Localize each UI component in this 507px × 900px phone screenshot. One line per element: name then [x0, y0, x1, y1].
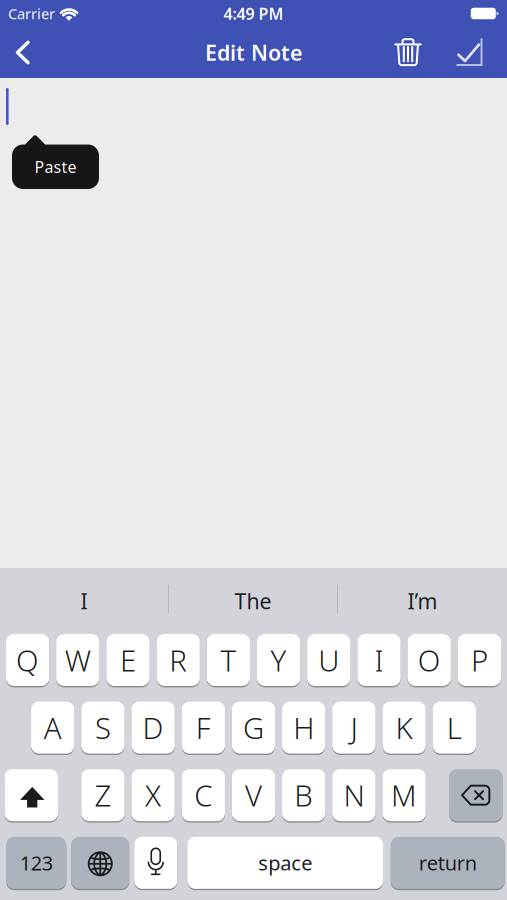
button[interactable]: I [357, 634, 401, 686]
staticText: H [293, 708, 314, 747]
button[interactable]: Shift [4, 769, 58, 821]
button[interactable]: F [182, 702, 225, 754]
button[interactable]: R [156, 634, 200, 686]
staticText: return [419, 849, 477, 876]
button[interactable]: U [307, 634, 350, 686]
button[interactable]: Next keyboard [71, 837, 129, 889]
staticText: Edit Note [205, 38, 302, 67]
staticText: I’m [407, 587, 437, 615]
button[interactable]: Q [6, 634, 49, 686]
button[interactable]: D [131, 702, 175, 754]
staticText: Y [271, 640, 287, 679]
button[interactable]: M [382, 769, 426, 821]
button[interactable]: I [0, 568, 168, 634]
button[interactable]: J [332, 702, 375, 754]
staticText: N [343, 776, 364, 815]
button[interactable]: W [56, 634, 99, 686]
button[interactable]: N [332, 769, 375, 821]
button[interactable]: B [282, 769, 325, 821]
staticText: K [396, 708, 413, 747]
button[interactable]: O [407, 634, 451, 686]
button[interactable]: Z [81, 769, 124, 821]
staticText: F [196, 708, 211, 747]
button[interactable]: S [81, 702, 124, 754]
staticText: S [95, 708, 111, 747]
staticText: O [418, 640, 441, 679]
button[interactable]: E [106, 634, 150, 686]
button[interactable]: Delete note [383, 27, 433, 78]
staticText: D [143, 708, 164, 747]
button[interactable]: Numbers [6, 837, 66, 889]
button[interactable]: K [382, 702, 426, 754]
button[interactable]: A [31, 702, 74, 754]
staticText: E [120, 640, 136, 679]
staticText: R [169, 640, 187, 679]
button[interactable]: L [433, 702, 476, 754]
staticText: L [447, 708, 462, 747]
button[interactable]: Back [0, 27, 46, 78]
staticText: Paste [34, 156, 76, 177]
button[interactable]: X [131, 769, 175, 821]
staticText: space [258, 849, 312, 876]
staticText: I [374, 640, 383, 679]
staticText: B [294, 776, 313, 815]
staticText: Z [94, 776, 111, 815]
button[interactable]: Delete [449, 769, 502, 821]
staticText: Q [16, 640, 39, 679]
staticText: P [471, 640, 488, 679]
staticText: 123 [20, 849, 53, 876]
staticText: M [391, 776, 417, 815]
staticText: V [245, 776, 262, 815]
button[interactable]: P [458, 634, 501, 686]
button[interactable]: H [282, 702, 325, 754]
staticText: T [220, 640, 236, 679]
staticText: Carrier [8, 4, 55, 23]
staticText: I [80, 587, 87, 615]
button[interactable]: G [232, 702, 275, 754]
button[interactable]: Save note [447, 27, 491, 78]
button[interactable]: The [169, 568, 337, 634]
staticText: X [145, 776, 161, 815]
staticText: The [234, 587, 271, 615]
staticText: C [194, 776, 212, 815]
staticText: W [65, 640, 91, 679]
staticText: A [44, 708, 62, 747]
button[interactable]: Dictate [134, 837, 177, 889]
staticText: G [243, 708, 264, 747]
button[interactable]: V [232, 769, 275, 821]
button[interactable]: Return [391, 837, 505, 889]
staticText: U [318, 640, 339, 679]
staticText: J [350, 708, 357, 747]
button[interactable]: Y [257, 634, 300, 686]
staticText: 4:49 PM [223, 3, 283, 24]
button[interactable]: I’m [338, 568, 507, 634]
button[interactable]: T [207, 634, 250, 686]
button[interactable]: C [182, 769, 225, 821]
button[interactable]: Paste [12, 134, 99, 189]
button[interactable]: Space [187, 837, 383, 889]
